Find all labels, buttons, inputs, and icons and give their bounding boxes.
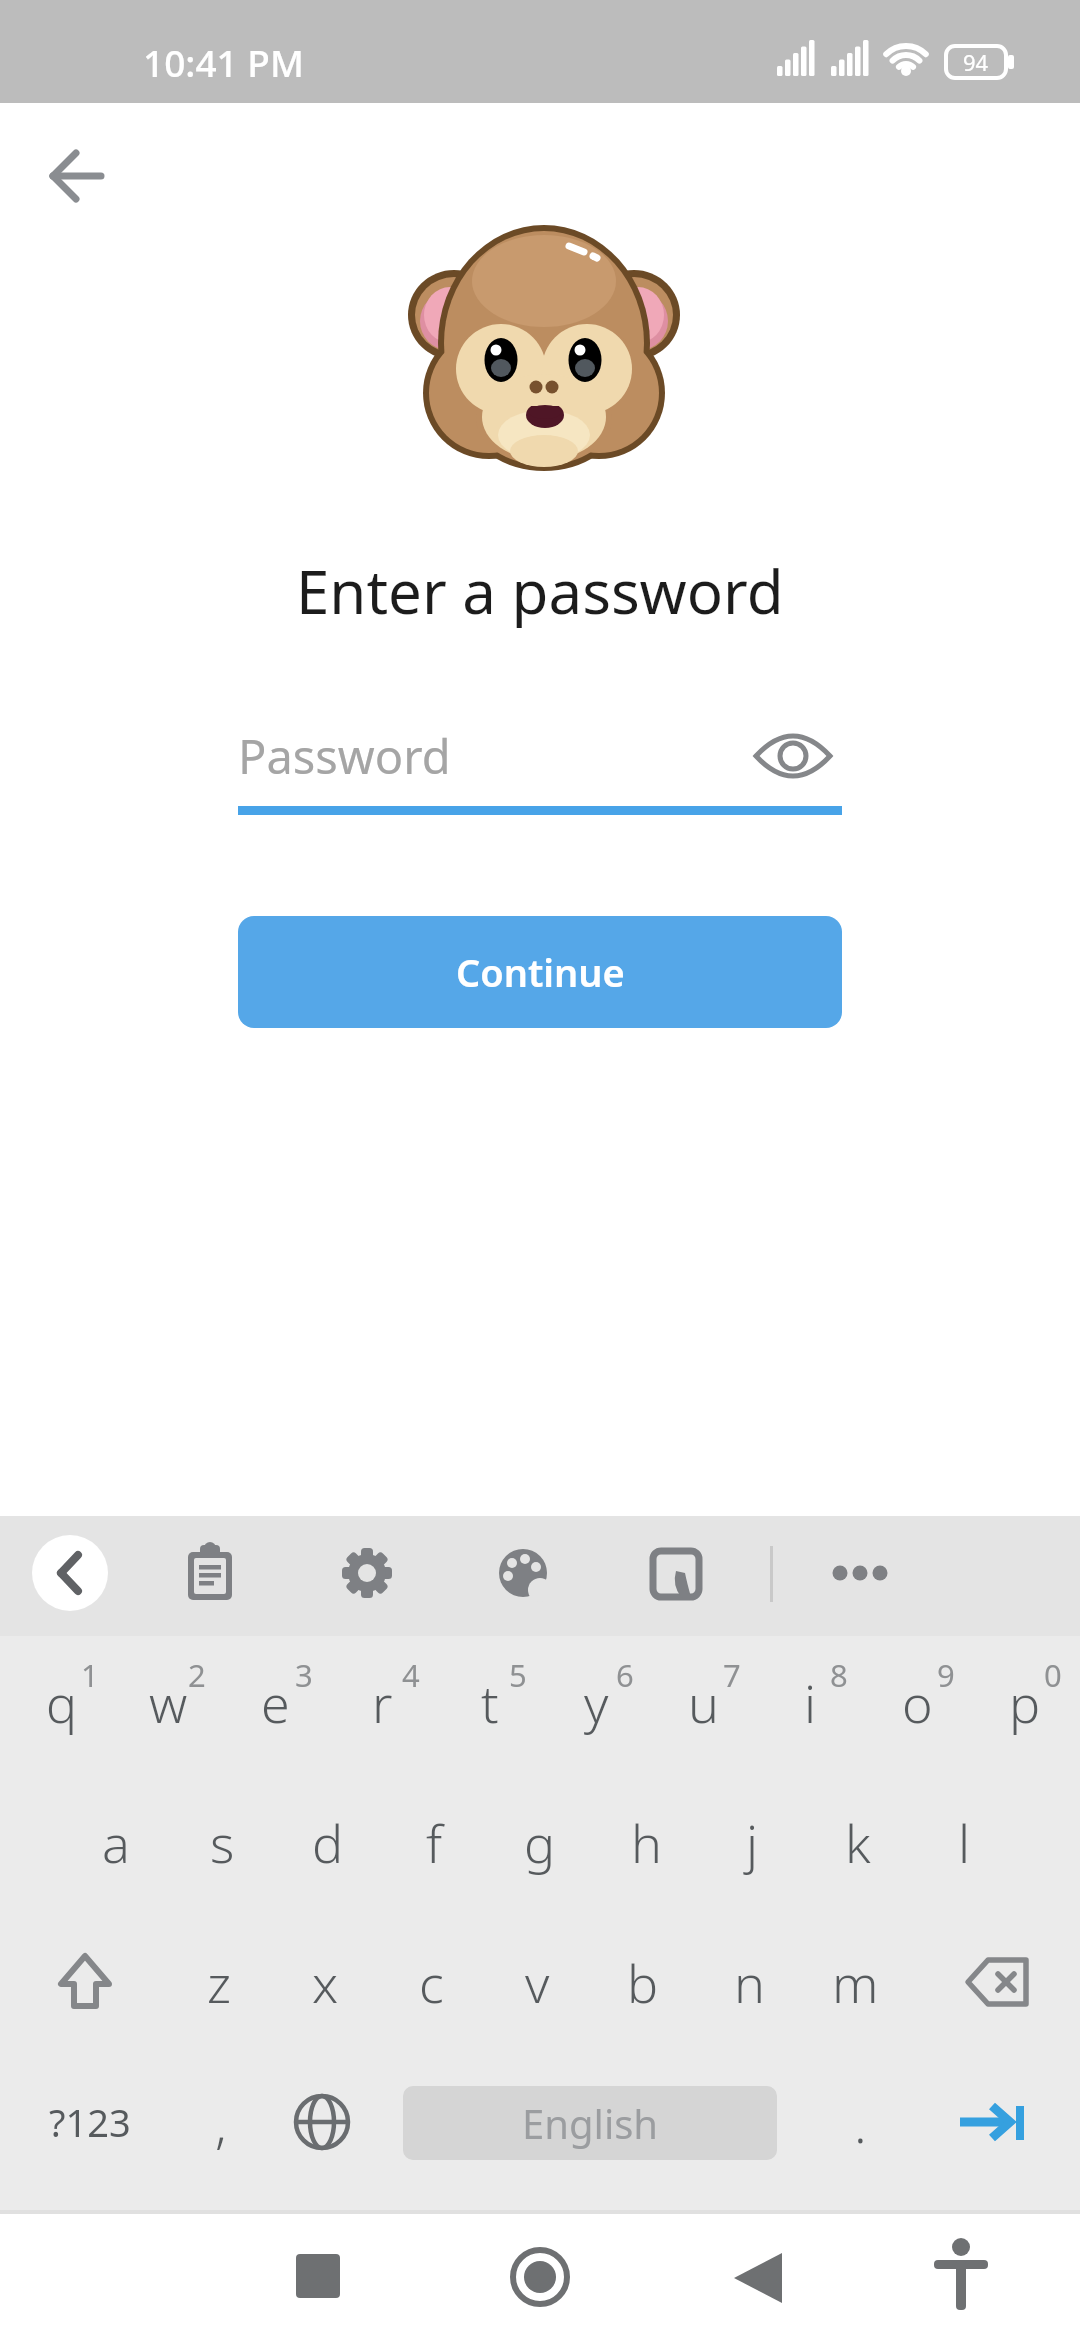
staticText: 94 [963, 47, 989, 77]
button[interactable]: y [543, 1632, 650, 1772]
staticText: w [149, 1667, 188, 1738]
button[interactable]: r [329, 1632, 436, 1772]
staticText: n [734, 1947, 765, 2018]
button[interactable]: a [63, 1772, 169, 1912]
button[interactable]: u [650, 1632, 757, 1772]
button[interactable]: k [805, 1772, 911, 1912]
button[interactable] [180, 1543, 240, 1603]
staticText: 2 [188, 1654, 206, 1696]
staticText: p [1009, 1667, 1041, 1738]
button[interactable] [20, 1912, 160, 2052]
button[interactable]: j [699, 1772, 805, 1912]
button[interactable]: h [593, 1772, 699, 1912]
button[interactable]: b [590, 1912, 696, 2052]
button[interactable] [40, 140, 112, 212]
staticText: ?123 [49, 2096, 131, 2148]
staticText: j [746, 1807, 759, 1878]
button[interactable]: Continue [238, 916, 842, 1028]
staticText: t [481, 1667, 499, 1738]
staticText: u [688, 1667, 719, 1738]
button[interactable]: . [815, 2052, 905, 2192]
staticText: 10:41 PM [143, 37, 304, 87]
button[interactable] [920, 1912, 1070, 2052]
button[interactable] [32, 1535, 108, 1611]
button[interactable]: t [436, 1632, 543, 1772]
button[interactable] [646, 1543, 706, 1603]
button[interactable]: f [381, 1772, 487, 1912]
staticText: x [312, 1947, 339, 2018]
button[interactable]: d [275, 1772, 381, 1912]
staticText: 0 [1044, 1654, 1062, 1696]
button[interactable] [930, 2052, 1060, 2192]
staticText: m [832, 1947, 879, 2018]
button[interactable]: v [484, 1912, 590, 2052]
staticText: 1 [81, 1654, 99, 1696]
button[interactable]: p [971, 1632, 1078, 1772]
button[interactable]: w [115, 1632, 222, 1772]
staticText: l [958, 1807, 971, 1878]
staticText: Password [238, 724, 451, 788]
button[interactable] [828, 1543, 908, 1603]
button[interactable] [732, 2252, 784, 2304]
button[interactable]: x [272, 1912, 378, 2052]
button[interactable] [275, 2052, 370, 2192]
button[interactable] [337, 1543, 397, 1603]
button[interactable] [925, 2236, 997, 2320]
button[interactable]: English [403, 2086, 777, 2160]
staticText: , [215, 2087, 227, 2158]
staticText: 9 [937, 1654, 955, 1696]
button[interactable]: , [176, 2052, 266, 2192]
button[interactable]: c [378, 1912, 484, 2052]
button[interactable]: ?123 [20, 2052, 160, 2192]
button[interactable]: z [166, 1912, 272, 2052]
staticText: c [419, 1947, 444, 2018]
button[interactable]: m [802, 1912, 908, 2052]
staticText: g [524, 1807, 556, 1878]
staticText: i [804, 1667, 817, 1738]
staticText: 4 [402, 1654, 420, 1696]
staticText: 3 [295, 1654, 313, 1696]
button[interactable] [493, 1543, 553, 1603]
button[interactable]: q [8, 1632, 115, 1772]
staticText: d [312, 1807, 344, 1878]
staticText: English [522, 2096, 659, 2150]
staticText: b [627, 1947, 659, 2018]
button[interactable]: e [222, 1632, 329, 1772]
staticText: 5 [509, 1654, 527, 1696]
button[interactable] [508, 2245, 572, 2309]
staticText: v [525, 1947, 550, 2018]
staticText: k [845, 1807, 871, 1878]
staticText: z [207, 1947, 232, 2018]
staticText: Continue [456, 946, 625, 998]
button[interactable] [750, 724, 836, 788]
staticText: 6 [616, 1654, 634, 1696]
staticText: . [854, 2087, 867, 2158]
staticText: a [102, 1807, 130, 1878]
staticText: r [372, 1667, 393, 1738]
staticText: q [46, 1667, 78, 1738]
staticText: 7 [723, 1654, 741, 1696]
button[interactable]: o [864, 1632, 971, 1772]
button[interactable]: g [487, 1772, 593, 1912]
button[interactable]: l [911, 1772, 1017, 1912]
button[interactable] [296, 2254, 342, 2300]
staticText: 8 [830, 1654, 848, 1696]
button[interactable]: i [757, 1632, 864, 1772]
staticText: Enter a password [296, 550, 784, 632]
staticText: f [426, 1807, 443, 1878]
staticText: y [584, 1667, 609, 1738]
staticText: s [210, 1807, 235, 1878]
staticText: e [261, 1667, 290, 1738]
staticText: o [902, 1667, 933, 1738]
button[interactable]: n [696, 1912, 802, 2052]
button[interactable]: s [169, 1772, 275, 1912]
staticText: h [631, 1807, 662, 1878]
